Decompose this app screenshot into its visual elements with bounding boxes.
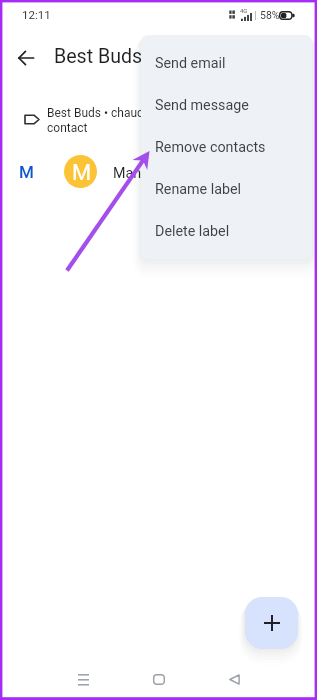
button[interactable]: Remove contacts bbox=[141, 126, 312, 168]
staticText: Manish bbox=[113, 165, 160, 182]
button[interactable]: Back bbox=[6, 38, 46, 78]
button[interactable]: Recent apps bbox=[63, 659, 103, 699]
staticText: 12:11 bbox=[22, 8, 51, 21]
button[interactable]: Back bbox=[214, 659, 254, 699]
button[interactable]: M bbox=[0, 148, 317, 194]
staticText: Best Buds • chaudhary contact bbox=[47, 106, 167, 135]
staticText: Delete label bbox=[155, 223, 230, 240]
button[interactable]: Send email bbox=[141, 42, 312, 84]
staticText: 58% bbox=[260, 9, 280, 21]
staticText: M bbox=[72, 160, 92, 186]
button[interactable]: Rename label bbox=[141, 168, 312, 210]
staticText: Remove contacts bbox=[155, 139, 266, 156]
button[interactable]: Delete label bbox=[141, 210, 312, 252]
button[interactable]: Create contact bbox=[245, 597, 298, 649]
staticText: Send email bbox=[155, 55, 226, 72]
staticText: Rename label bbox=[155, 181, 242, 198]
staticText: Send message bbox=[155, 97, 249, 114]
button[interactable]: Home bbox=[139, 659, 179, 699]
staticText: M bbox=[19, 162, 34, 182]
button[interactable]: Send message bbox=[141, 84, 312, 126]
staticText: Best Buds bbox=[54, 45, 143, 68]
staticText: 4G bbox=[240, 7, 248, 14]
